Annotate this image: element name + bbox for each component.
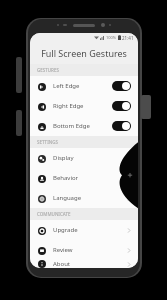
button[interactable]: Review xyxy=(30,240,138,260)
staticText: Right Edge xyxy=(53,102,84,110)
button[interactable]: Toggle on xyxy=(112,101,131,111)
staticText: SETTINGS xyxy=(37,139,58,145)
staticText: Language xyxy=(53,194,82,202)
button[interactable]: Behavior xyxy=(30,168,138,188)
staticText: 100% xyxy=(106,35,117,40)
staticText: About xyxy=(53,260,71,268)
button[interactable]: Language xyxy=(30,188,138,208)
staticText: Left Edge xyxy=(53,82,80,90)
staticText: Upgrade xyxy=(53,226,78,234)
button[interactable]: Bottom Edge xyxy=(30,116,138,136)
staticText: Full Screen Gestures xyxy=(41,47,127,59)
staticText: Bottom Edge xyxy=(53,122,90,130)
staticText: Review xyxy=(53,246,73,254)
staticText: Display xyxy=(53,154,74,162)
staticText: 21:41 xyxy=(122,35,134,41)
button[interactable]: Upgrade xyxy=(30,220,138,240)
button[interactable]: Display xyxy=(30,148,138,168)
staticText: Behavior xyxy=(53,174,79,182)
button[interactable]: Right Edge xyxy=(30,96,138,116)
button[interactable]: Left Edge xyxy=(30,76,138,96)
button[interactable]: Toggle on xyxy=(112,81,131,91)
button[interactable]: Toggle on xyxy=(112,121,131,131)
button[interactable]: About xyxy=(30,260,138,268)
staticText: COMMUNICATE xyxy=(37,211,71,217)
staticText: GESTURES xyxy=(37,67,59,73)
